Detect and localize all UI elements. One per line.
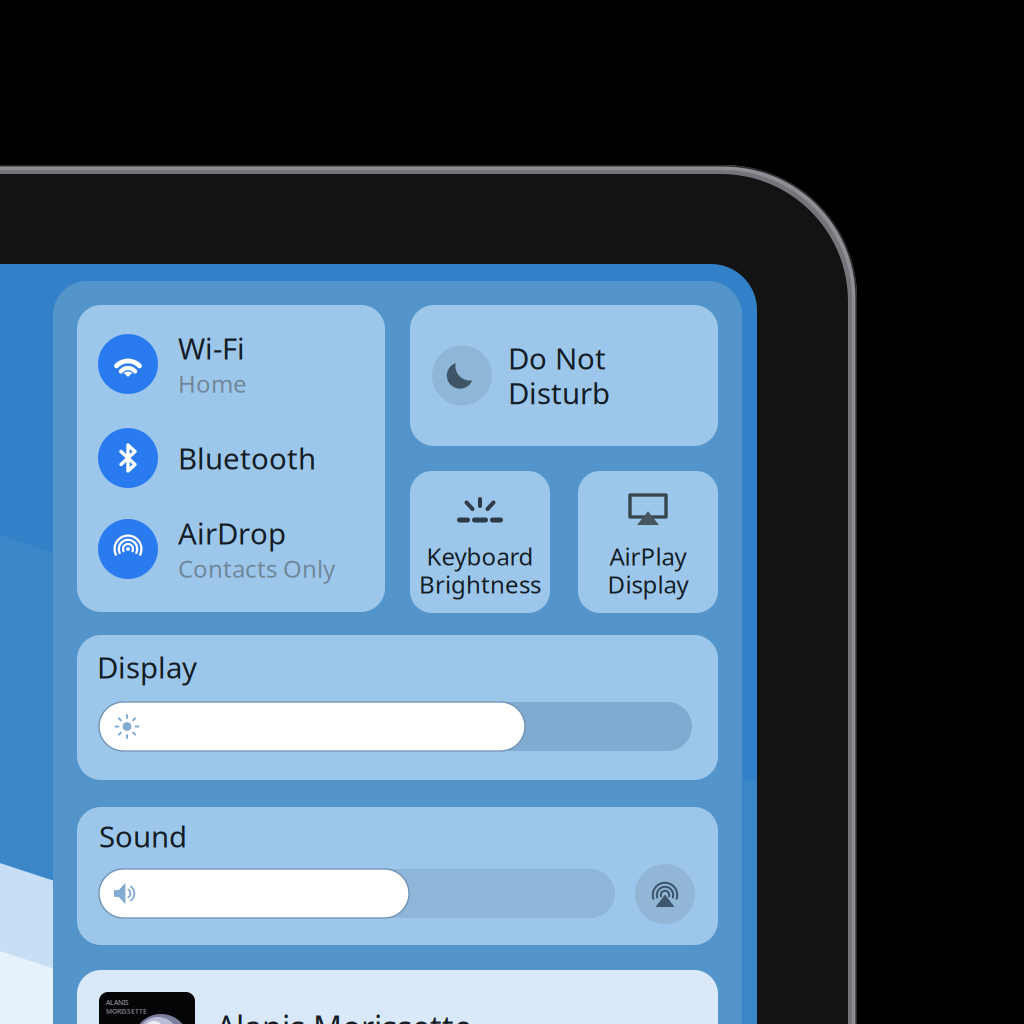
staticText: Display bbox=[97, 647, 197, 686]
staticText: ALANIS bbox=[106, 998, 129, 1007]
button[interactable]: Bluetooth bbox=[98, 428, 378, 488]
button[interactable]: Album artwork bbox=[99, 992, 195, 1024]
staticText: AirDrop bbox=[178, 514, 286, 553]
staticText: AirPlay bbox=[609, 540, 686, 572]
staticText: Contacts Only bbox=[178, 552, 335, 584]
staticText: MORISSETTE bbox=[106, 1007, 147, 1016]
staticText: Alanis Morissette bbox=[216, 1006, 472, 1024]
button[interactable]: Volume bbox=[99, 869, 615, 918]
staticText: Home bbox=[178, 367, 247, 399]
staticText: Wi-Fi bbox=[178, 329, 245, 368]
button[interactable]: Wi-Fi bbox=[98, 334, 378, 394]
staticText: Disturb bbox=[508, 373, 610, 412]
button[interactable]: AirDrop bbox=[98, 519, 378, 579]
button[interactable]: AirPlay audio output bbox=[635, 864, 695, 924]
staticText: Brightness bbox=[419, 568, 541, 600]
staticText: Bluetooth bbox=[178, 438, 316, 477]
button[interactable]: Display brightness bbox=[99, 702, 692, 751]
button[interactable]: Keyboard bbox=[410, 471, 550, 613]
button[interactable]: Do Not bbox=[410, 305, 718, 446]
staticText: Do Not bbox=[508, 338, 606, 377]
staticText: Sound bbox=[99, 816, 187, 855]
staticText: Display bbox=[607, 568, 688, 600]
button[interactable]: AirPlay bbox=[578, 471, 718, 613]
staticText: Keyboard bbox=[426, 540, 533, 572]
